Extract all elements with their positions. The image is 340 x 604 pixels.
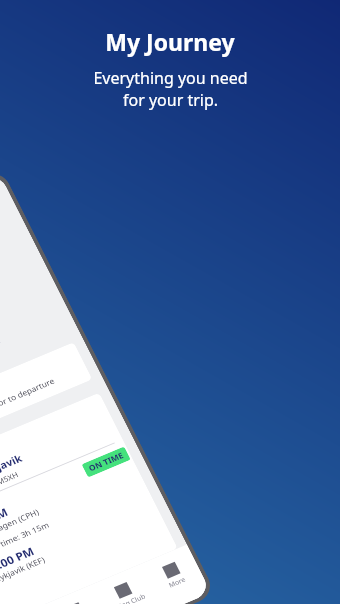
staticText: Reykjavik (KEF) [0,554,47,587]
staticText: CPH - Reykjavik [0,451,25,496]
staticText: More [167,575,188,590]
staticText: My Journey [105,26,235,57]
staticText: Flying Club [110,592,148,604]
staticText: Travel time: 3h 15m [0,519,51,559]
staticText: Everything you need for your trip. [93,67,248,111]
staticText: ON TIME [87,450,125,474]
staticText: Reference: KLM5XH [0,469,20,506]
staticText: 01:00 PM [0,543,37,577]
staticText: Check in 24 hours prior to departure [0,375,57,441]
staticText: Copenhagen (CPH) [0,506,42,545]
staticText: CPH - Reykjavik [0,329,3,390]
staticText: 7:45 AM [0,504,10,535]
